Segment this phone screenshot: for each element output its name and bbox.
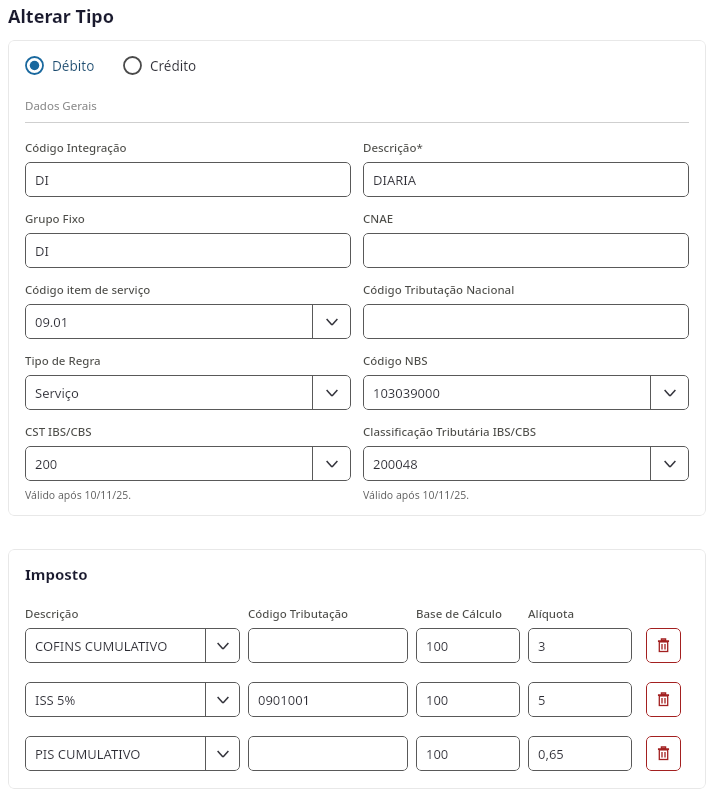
staticText: CST IBS/CBS	[25, 424, 92, 440]
staticText: Base de Cálculo	[416, 606, 502, 622]
staticText: Grupo Fixo	[25, 211, 85, 227]
staticText: 0901001	[258, 691, 311, 709]
staticText: 3	[538, 637, 546, 655]
staticText: Crédito	[150, 57, 197, 75]
staticText: 0,65	[538, 745, 564, 763]
staticText: Código Integração	[25, 140, 127, 156]
button[interactable]: COFINS CUMULATIVO	[25, 628, 240, 663]
staticText: Serviço	[35, 384, 79, 402]
staticText: Código Tributação Nacional	[363, 282, 515, 298]
button[interactable]	[363, 233, 689, 268]
button[interactable]: 200048	[363, 446, 689, 481]
button[interactable]: DI	[25, 233, 351, 268]
button[interactable]: 0,65	[528, 736, 632, 771]
staticText: 100	[426, 691, 449, 709]
staticText: Alterar Tipo	[8, 4, 114, 29]
button[interactable]: 09.01	[25, 304, 351, 339]
button[interactable]: Crédito	[123, 54, 197, 77]
staticText: PIS CUMULATIVO	[35, 745, 141, 763]
button[interactable]: 0901001	[248, 682, 408, 717]
button[interactable]: 100	[416, 736, 520, 771]
staticText: Dados Gerais	[25, 98, 97, 114]
button[interactable]: DI	[25, 162, 351, 197]
staticText: Débito	[52, 57, 95, 75]
staticText: Imposto	[25, 564, 88, 584]
staticText: ISS 5%	[35, 691, 76, 709]
button[interactable]: Excluir	[646, 736, 681, 771]
button[interactable]: 103039000	[363, 375, 689, 410]
button[interactable]: Excluir	[646, 628, 681, 663]
button[interactable]: 200	[25, 446, 351, 481]
staticText: DIARIA	[373, 171, 417, 189]
button[interactable]: Débito	[25, 54, 95, 77]
button[interactable]	[363, 304, 689, 339]
staticText: CNAE	[363, 211, 394, 227]
staticText: Tipo de Regra	[25, 353, 101, 369]
staticText: Classificação Tributária IBS/CBS	[363, 424, 537, 440]
button[interactable]: DIARIA	[363, 162, 689, 197]
staticText: 200	[35, 455, 58, 473]
staticText: 100	[426, 745, 449, 763]
staticText: Código NBS	[363, 353, 428, 369]
button[interactable]	[248, 736, 408, 771]
button[interactable]: 3	[528, 628, 632, 663]
staticText: Alíquota	[528, 606, 575, 622]
staticText: DI	[35, 171, 49, 189]
staticText: DI	[35, 242, 49, 260]
button[interactable]: Excluir	[646, 682, 681, 717]
staticText: 200048	[373, 455, 418, 473]
staticText: 5	[538, 691, 546, 709]
button[interactable]	[248, 628, 408, 663]
staticText: 100	[426, 637, 449, 655]
button[interactable]: 100	[416, 682, 520, 717]
staticText: 09.01	[35, 313, 69, 331]
button[interactable]: 5	[528, 682, 632, 717]
staticText: Descrição	[25, 606, 79, 622]
staticText: Descrição*	[363, 140, 423, 156]
staticText: Código Tributação	[248, 606, 349, 622]
staticText: Válido após 10/11/25.	[25, 488, 132, 502]
staticText: COFINS CUMULATIVO	[35, 637, 168, 655]
button[interactable]: 100	[416, 628, 520, 663]
button[interactable]: PIS CUMULATIVO	[25, 736, 240, 771]
staticText: Válido após 10/11/25.	[363, 488, 470, 502]
staticText: Código item de serviço	[25, 282, 151, 298]
button[interactable]: ISS 5%	[25, 682, 240, 717]
button[interactable]: Serviço	[25, 375, 351, 410]
staticText: 103039000	[373, 384, 440, 402]
